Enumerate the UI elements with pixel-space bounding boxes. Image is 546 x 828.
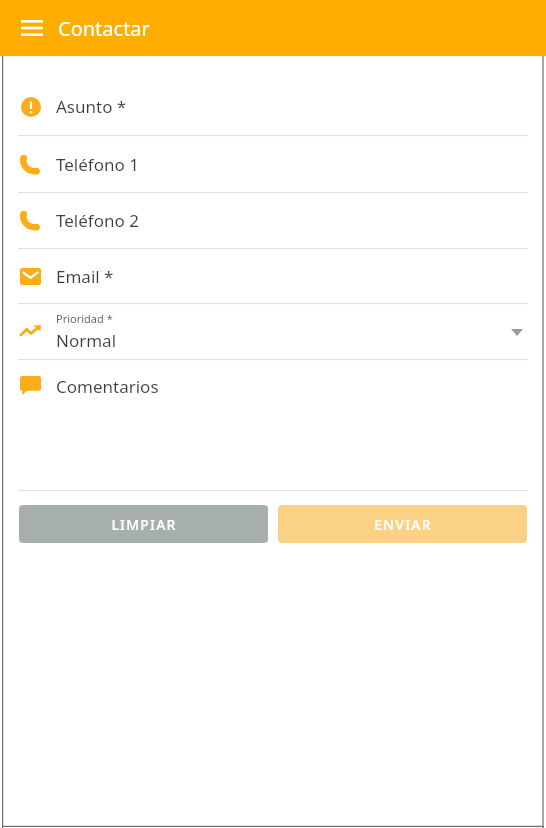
staticText: Teléfono 2 [56, 209, 139, 232]
staticText: Comentarios [56, 375, 159, 398]
staticText: Asunto * [56, 95, 127, 118]
button[interactable]: Teléfono 2 [0, 193, 546, 248]
button[interactable]: Email * [0, 249, 546, 303]
button[interactable]: Menu [12, 8, 52, 48]
staticText: Prioridad * [56, 311, 113, 326]
button[interactable]: Prioridad * [0, 304, 546, 359]
staticText: Teléfono 1 [56, 153, 139, 176]
staticText: Normal [56, 329, 117, 352]
staticText: Email * [56, 265, 114, 288]
staticText: ENVIAR [374, 515, 432, 534]
staticText: Contactar [58, 15, 150, 42]
button[interactable]: LIMPIAR [19, 505, 268, 543]
staticText: LIMPIAR [111, 515, 177, 534]
button[interactable]: Teléfono 1 [0, 136, 546, 192]
button[interactable]: ENVIAR [278, 505, 527, 543]
button[interactable]: Comentarios [0, 360, 546, 490]
button[interactable]: Asunto * [0, 78, 546, 135]
